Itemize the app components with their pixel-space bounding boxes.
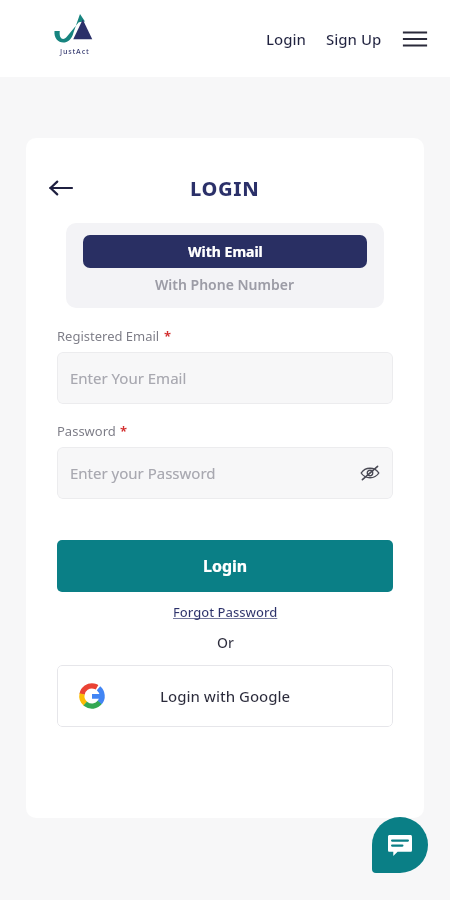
staticText: With Email [188, 242, 263, 261]
button[interactable]: With Email [83, 235, 367, 268]
button[interactable]: Chat support [372, 817, 428, 873]
button[interactable]: Enter your Password [57, 447, 393, 499]
button[interactable]: Login with Google [57, 665, 393, 727]
button[interactable]: Forgot Password [167, 600, 284, 624]
staticText: Login [203, 555, 248, 577]
button[interactable]: Open menu [398, 22, 432, 56]
staticText: Login with Google [160, 686, 291, 706]
button[interactable]: Login [260, 23, 312, 55]
button[interactable]: Back [44, 171, 78, 205]
button[interactable]: Login [57, 540, 393, 592]
staticText: Enter Your Email [70, 368, 187, 388]
button[interactable]: With Phone Number [83, 268, 367, 301]
staticText: Sign Up [326, 29, 382, 49]
button[interactable]: JustAct home [50, 12, 100, 57]
staticText: Or [217, 633, 234, 652]
staticText: Enter your Password [70, 463, 216, 483]
staticText: Forgot Password [173, 603, 278, 621]
staticText: * [120, 422, 128, 440]
staticText: * [164, 327, 172, 345]
button[interactable]: Sign Up [320, 23, 388, 55]
staticText: Login [266, 29, 306, 49]
button[interactable]: Enter Your Email [57, 352, 393, 404]
button[interactable]: Show password [355, 458, 385, 488]
staticText: With Phone Number [155, 275, 295, 294]
staticText: LOGIN [190, 175, 260, 202]
staticText: JustAct [60, 47, 90, 57]
staticText: Password [57, 422, 116, 440]
staticText: Registered Email [57, 327, 160, 345]
